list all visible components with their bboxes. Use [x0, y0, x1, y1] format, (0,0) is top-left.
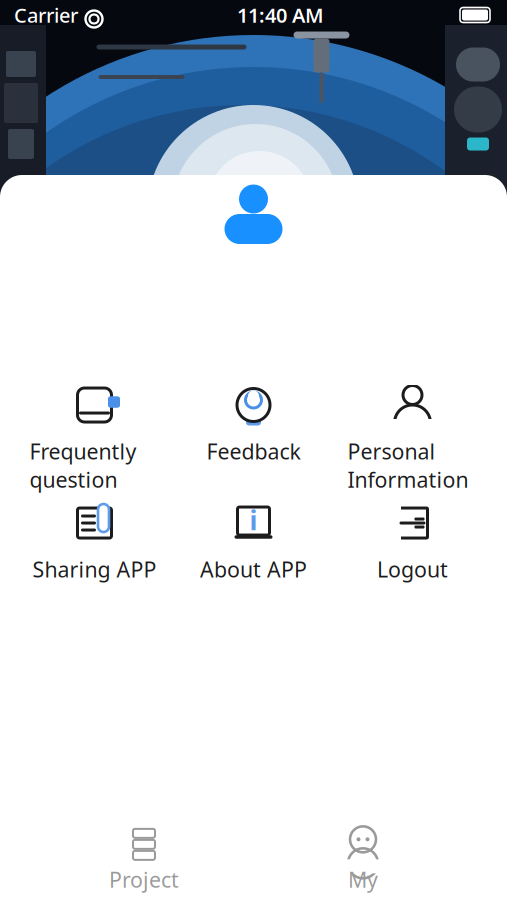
button[interactable]: My	[288, 828, 438, 894]
staticText: My	[348, 865, 378, 894]
staticText: Logout	[377, 555, 448, 583]
staticText: 11:40 AM	[237, 2, 324, 28]
button[interactable]: Feedback	[178, 385, 328, 489]
button[interactable]: Sharing APP	[19, 503, 169, 607]
staticText: Sharing APP	[32, 555, 156, 583]
button[interactable]: Personal Information	[337, 385, 487, 489]
staticText: Project	[109, 865, 179, 894]
staticText: Feedback	[206, 437, 300, 465]
staticText: Personal Information	[347, 437, 468, 494]
button[interactable]: Logout	[337, 503, 487, 607]
staticText: Carrier	[14, 2, 78, 28]
staticText: i	[249, 502, 257, 538]
staticText: Frequently question	[29, 437, 136, 494]
staticText: About APP	[200, 555, 307, 583]
button[interactable]: Frequently question	[19, 385, 169, 489]
button[interactable]: Project	[69, 828, 219, 894]
button[interactable]: i	[178, 503, 328, 607]
